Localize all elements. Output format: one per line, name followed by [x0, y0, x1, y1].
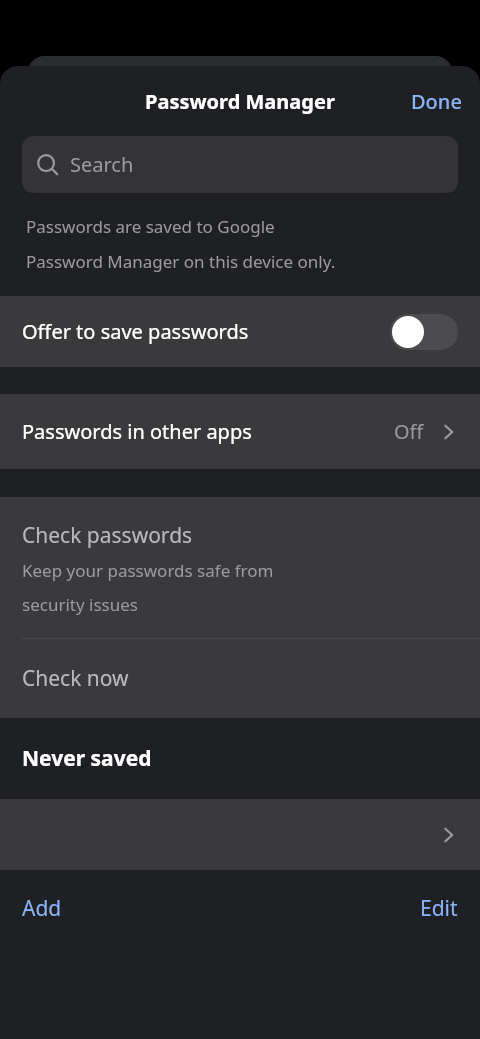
button[interactable]: Offer to save passwords toggle — [390, 314, 458, 350]
staticText: Done — [411, 88, 462, 115]
staticText: Edit — [420, 894, 458, 923]
staticText: Keep your passwords safe from — [22, 559, 274, 582]
staticText: Password Manager — [145, 88, 335, 115]
button[interactable]: Done — [393, 78, 480, 125]
button[interactable]: Edit — [398, 886, 480, 931]
staticText: security issues — [22, 593, 138, 616]
staticText: Check now — [22, 664, 129, 693]
button[interactable]: Add — [0, 886, 84, 931]
button[interactable]: Check now — [0, 639, 480, 718]
button[interactable]: Offer to save passwords — [0, 296, 480, 367]
button[interactable]: Passwords in other apps — [0, 394, 480, 469]
staticText: Passwords are saved to Google — [26, 215, 275, 238]
staticText: Off — [394, 418, 424, 445]
staticText: Password Manager on this device only. — [26, 250, 336, 273]
staticText: Never saved — [22, 744, 152, 773]
staticText: Offer to save passwords — [22, 318, 390, 345]
button[interactable]: Search — [22, 136, 458, 193]
button[interactable]: Never saved entry — [0, 799, 480, 870]
staticText: Add — [22, 894, 62, 923]
button[interactable]: Check passwords — [0, 497, 480, 638]
staticText: Passwords in other apps — [22, 418, 394, 445]
staticText: Search — [70, 151, 134, 178]
staticText: Check passwords — [22, 521, 193, 550]
